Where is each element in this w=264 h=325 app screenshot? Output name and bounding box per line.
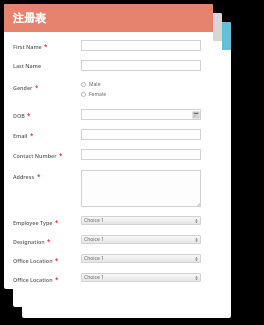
staticText: *: [27, 111, 31, 119]
button[interactable]: [81, 60, 201, 71]
staticText: *: [47, 237, 51, 245]
button[interactable]: [81, 40, 201, 51]
staticText: *: [35, 83, 39, 91]
button[interactable]: [81, 149, 201, 160]
staticText: 注册表: [13, 11, 46, 25]
staticText: Choice 1: [84, 255, 104, 262]
staticText: *: [55, 256, 59, 264]
staticText: *: [30, 131, 34, 139]
button[interactable]: [81, 129, 201, 140]
staticText: Last Name: [13, 62, 42, 69]
staticText: *: [55, 218, 59, 226]
staticText: Office Location: [13, 276, 53, 283]
staticText: Email: [13, 132, 28, 139]
staticText: *: [55, 275, 59, 283]
staticText: Female: [89, 91, 107, 98]
staticText: Contact Number: [13, 152, 57, 159]
button[interactable]: Choice 1: [81, 273, 201, 282]
button[interactable]: Male: [81, 81, 101, 88]
staticText: DOB: [13, 112, 25, 119]
staticText: Choice 1: [84, 274, 104, 281]
button[interactable]: Pick date: [193, 112, 199, 118]
staticText: Office Location: [13, 257, 53, 264]
staticText: Employee Type: [13, 219, 53, 226]
button[interactable]: Female: [81, 91, 107, 98]
staticText: *: [37, 172, 41, 180]
button[interactable]: Choice 1: [81, 254, 201, 263]
staticText: Male: [89, 81, 101, 88]
staticText: Designation: [13, 238, 45, 245]
button[interactable]: Pick date: [81, 109, 201, 120]
staticText: Choice 1: [84, 236, 104, 243]
staticText: Gender: [13, 84, 33, 91]
staticText: Address: [13, 173, 35, 180]
button[interactable]: Choice 1: [81, 216, 201, 225]
staticText: *: [44, 42, 48, 50]
staticText: Choice 1: [84, 217, 104, 224]
staticText: First Name: [13, 43, 42, 50]
button[interactable]: Choice 1: [81, 235, 201, 244]
staticText: *: [59, 151, 63, 159]
button[interactable]: [81, 170, 201, 207]
